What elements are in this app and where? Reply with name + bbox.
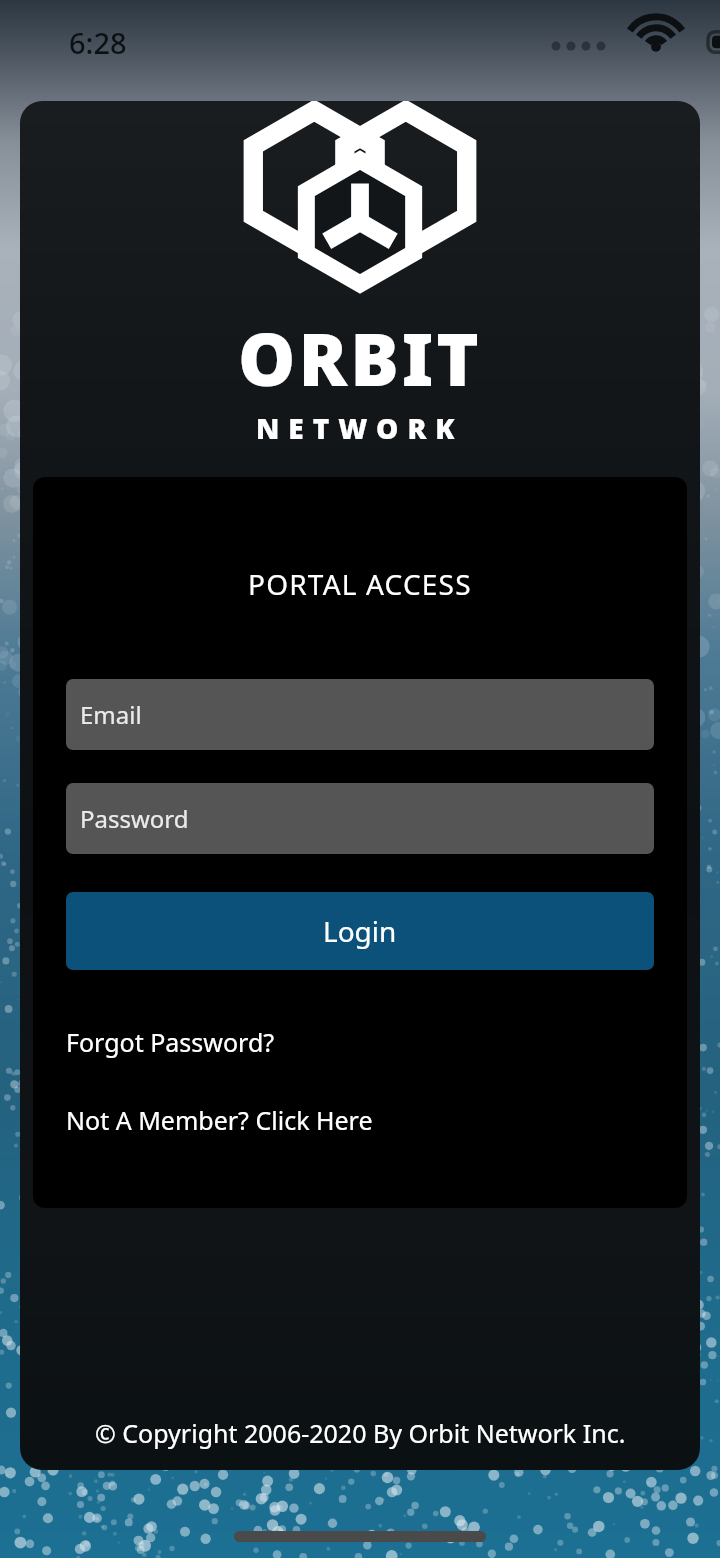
staticText: ORBIT: [238, 309, 482, 407]
button[interactable]: Login: [66, 892, 654, 970]
other: Status icons: [548, 25, 698, 59]
staticText: Password: [80, 802, 189, 835]
staticText: Forgot Password?: [66, 1025, 275, 1059]
staticText: © Copyright 2006-2020 By Orbit Network I…: [95, 1416, 626, 1450]
staticText: NETWORK: [256, 409, 464, 447]
staticText: Not A Member? Click Here: [66, 1103, 373, 1137]
staticText: PORTAL ACCESS: [248, 565, 472, 603]
staticText: Email: [80, 698, 142, 731]
button[interactable]: Email: [66, 679, 654, 750]
button[interactable]: Forgot Password?: [66, 1017, 654, 1067]
staticText: 6:28: [69, 23, 127, 62]
button[interactable]: Password: [66, 783, 654, 854]
staticText: Login: [323, 912, 397, 950]
button[interactable]: Not A Member? Click Here: [66, 1095, 654, 1145]
